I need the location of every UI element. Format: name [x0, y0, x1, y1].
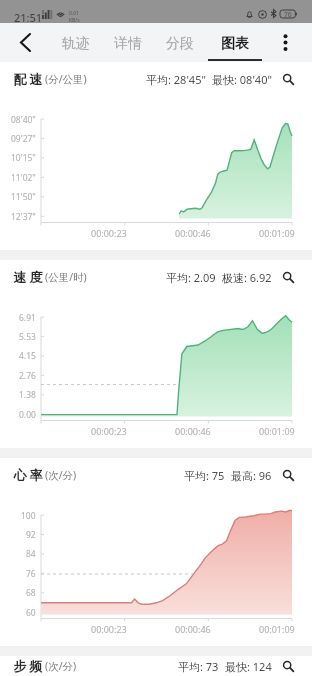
staticText: 速度 — [12, 269, 44, 285]
staticText: 6.91 — [19, 312, 36, 324]
staticText: 5.53 — [19, 331, 36, 343]
staticText: (次/分) — [45, 468, 77, 482]
button[interactable]: Back — [0, 23, 50, 62]
staticText: 76 — [26, 568, 36, 580]
staticText: 0.00 — [19, 409, 36, 421]
button[interactable]: 图表 — [205, 23, 265, 62]
button[interactable]: 分段 — [154, 23, 206, 62]
staticText: 100 — [21, 510, 36, 522]
staticText: 4.15 — [19, 350, 36, 362]
button[interactable]: Zoom chart — [280, 658, 296, 674]
staticText: 00:00:23 — [91, 623, 127, 635]
staticText: 00:00:23 — [91, 227, 127, 239]
staticText: (公里/时) — [45, 270, 87, 284]
staticText: 00:00:46 — [175, 227, 211, 239]
staticText: 00:01:09 — [259, 425, 295, 437]
staticText: 平均: 75 — [184, 468, 225, 483]
staticText: 12'37" — [11, 211, 36, 223]
staticText: 11'02" — [11, 172, 36, 184]
staticText: 60 — [26, 607, 36, 619]
button[interactable]: Zoom chart — [280, 467, 296, 483]
staticText: (分/公里) — [45, 72, 87, 86]
staticText: 分段 — [166, 35, 194, 53]
button[interactable]: 轨迹 — [50, 23, 102, 62]
staticText: 图表 — [221, 35, 249, 53]
staticText: KB/s — [69, 17, 80, 24]
button[interactable]: More options — [262, 23, 308, 62]
staticText: 21:51 — [14, 10, 43, 25]
staticText: 0.01 — [69, 10, 79, 17]
staticText: 步频 — [12, 658, 44, 674]
staticText: 最快: 124 — [225, 659, 272, 674]
staticText: 平均: 28'45" — [146, 72, 206, 87]
staticText: 08'40" — [11, 114, 36, 126]
button[interactable]: Zoom chart — [280, 71, 296, 87]
button[interactable]: Zoom chart — [280, 269, 296, 285]
staticText: 轨迹 — [62, 35, 90, 53]
button[interactable]: 详情 — [102, 23, 154, 62]
staticText: 09'27" — [11, 133, 36, 145]
staticText: 76 — [284, 10, 292, 18]
staticText: 最快: 08'40" — [212, 72, 272, 87]
staticText: 10'15" — [11, 152, 36, 164]
staticText: 平均: 2.09 — [166, 270, 216, 285]
staticText: 92 — [26, 529, 36, 541]
staticText: 11'50" — [11, 191, 36, 203]
staticText: 1.38 — [19, 389, 36, 401]
staticText: 84 — [26, 548, 36, 560]
staticText: (次/分) — [45, 659, 77, 673]
staticText: 00:00:46 — [175, 623, 211, 635]
staticText: 心率 — [12, 467, 44, 483]
staticText: 00:01:09 — [259, 623, 295, 635]
staticText: 最高: 96 — [231, 468, 272, 483]
staticText: 00:01:09 — [259, 227, 295, 239]
staticText: 00:00:23 — [91, 425, 127, 437]
staticText: 配速 — [12, 71, 44, 87]
staticText: 00:00:46 — [175, 425, 211, 437]
staticText: 平均: 73 — [178, 659, 219, 674]
staticText: 极速: 6.92 — [222, 270, 272, 285]
staticText: 68 — [26, 587, 36, 599]
staticText: 详情 — [114, 35, 142, 53]
staticText: 2.76 — [19, 370, 36, 382]
